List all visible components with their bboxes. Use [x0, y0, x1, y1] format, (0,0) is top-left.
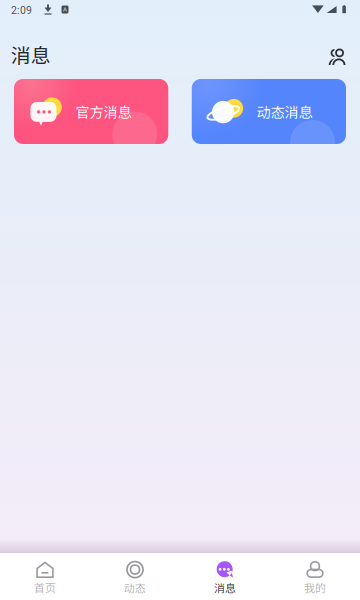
staticText: 我的: [304, 580, 326, 595]
button[interactable]: 我的: [270, 553, 360, 600]
button[interactable]: 动态: [90, 553, 180, 600]
button[interactable]: 消息: [180, 553, 270, 600]
button[interactable]: 首页: [0, 553, 90, 600]
staticText: 消息: [11, 40, 51, 69]
staticText: 消息: [214, 580, 236, 595]
staticText: 官方消息: [75, 101, 131, 122]
staticText: 动态消息: [256, 101, 312, 122]
staticText: 动态: [124, 580, 146, 595]
staticText: 首页: [34, 580, 56, 595]
staticText: A: [63, 6, 67, 13]
staticText: 2:09: [11, 4, 32, 16]
button[interactable]: 动态消息: [192, 79, 346, 144]
button[interactable]: Friends: [323, 42, 352, 67]
button[interactable]: 官方消息: [14, 79, 168, 144]
